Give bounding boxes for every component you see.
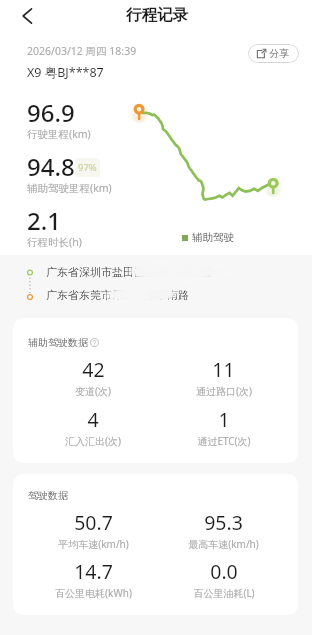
staticText: 广东省深圳市盐田区盐田港物流园 [46, 265, 211, 279]
staticText: 辅助驾驶 [192, 231, 234, 244]
staticText: 50.7 [74, 509, 113, 536]
staticText: 14.7 [74, 558, 113, 585]
staticText: 百公里油耗(L) [193, 586, 255, 600]
staticText: 4 [87, 406, 99, 433]
staticText: X9 粤BJ***87 [27, 64, 104, 81]
staticText: 11 [212, 356, 235, 383]
staticText: 2.1 [27, 204, 61, 237]
staticText: 通过ETC(次) [197, 434, 251, 448]
staticText: 94.8 [27, 150, 75, 183]
staticText: 95.3 [204, 509, 243, 536]
staticText: 分享 [269, 47, 289, 60]
staticText: 97% [78, 161, 97, 174]
button[interactable]: Back [13, 2, 40, 29]
button[interactable]: 分享 [248, 44, 299, 63]
staticText: 变道(次) [75, 384, 111, 398]
staticText: 汇入汇出(次) [65, 434, 121, 448]
button[interactable]: Info [90, 338, 99, 347]
staticText: 驾驶数据 [28, 489, 68, 502]
staticText: 通过路口(次) [196, 384, 252, 398]
staticText: 辅助驾驶数据 [28, 336, 88, 349]
staticText: 平均车速(km/h) [58, 537, 129, 551]
staticText: 42 [82, 356, 105, 383]
staticText: 最高车速(km/h) [188, 537, 259, 551]
staticText: 96.9 [27, 96, 75, 129]
staticText: 1 [218, 406, 230, 433]
staticText: 行驶里程(km) [27, 127, 91, 141]
staticText: 0.0 [210, 558, 238, 585]
staticText: 行程时长(h) [27, 235, 82, 249]
staticText: 百公里电耗(kWh) [55, 586, 132, 600]
staticText: 辅助驾驶里程(km) [27, 181, 112, 195]
staticText: 行程记录 [126, 5, 188, 25]
staticText: 2026/03/12 周四 18:39 [27, 44, 137, 58]
staticText: 广东省东莞市厚街镇康乐南路 [46, 288, 189, 302]
